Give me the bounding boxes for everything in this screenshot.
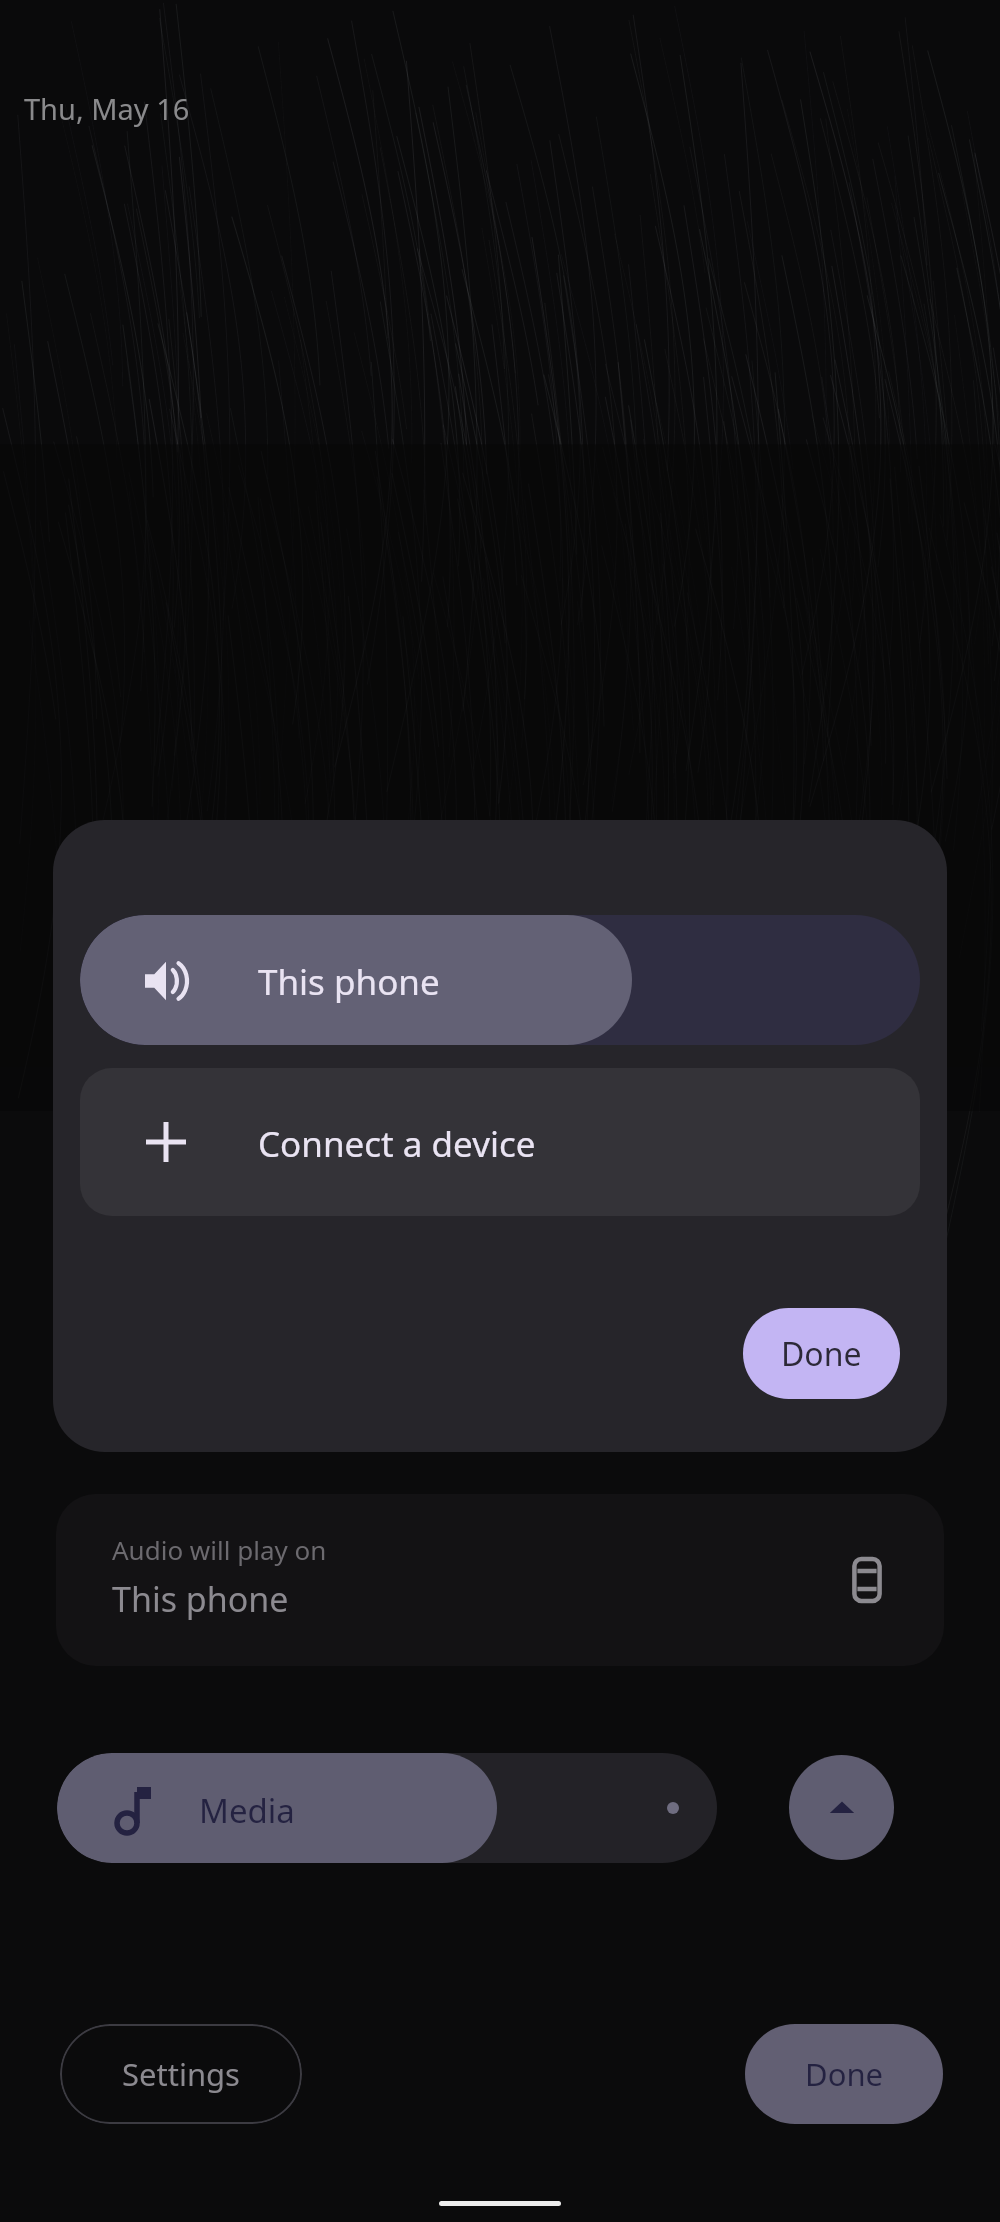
staticText: This phone xyxy=(112,1576,289,1622)
button[interactable]: This phone xyxy=(80,915,920,1045)
button[interactable]: Connect a device xyxy=(80,1068,920,1216)
button[interactable]: Media xyxy=(57,1753,717,1863)
staticText: Thu, May 16 xyxy=(24,89,190,128)
button[interactable]: Audio will play on xyxy=(56,1494,944,1666)
button[interactable]: Settings xyxy=(60,2024,302,2124)
staticText: Done xyxy=(781,1332,862,1376)
button[interactable]: Expand xyxy=(789,1755,894,1860)
other: This phone xyxy=(846,1559,888,1601)
staticText: Audio will play on xyxy=(112,1532,327,1567)
staticText: Settings xyxy=(122,2053,240,2095)
button[interactable]: Done xyxy=(745,2024,943,2124)
staticText: Connect a device xyxy=(258,1120,536,1168)
button[interactable]: Done xyxy=(743,1308,900,1399)
staticText: Media xyxy=(199,1788,295,1833)
staticText: This phone xyxy=(258,958,440,1006)
staticText: Done xyxy=(805,2053,884,2095)
